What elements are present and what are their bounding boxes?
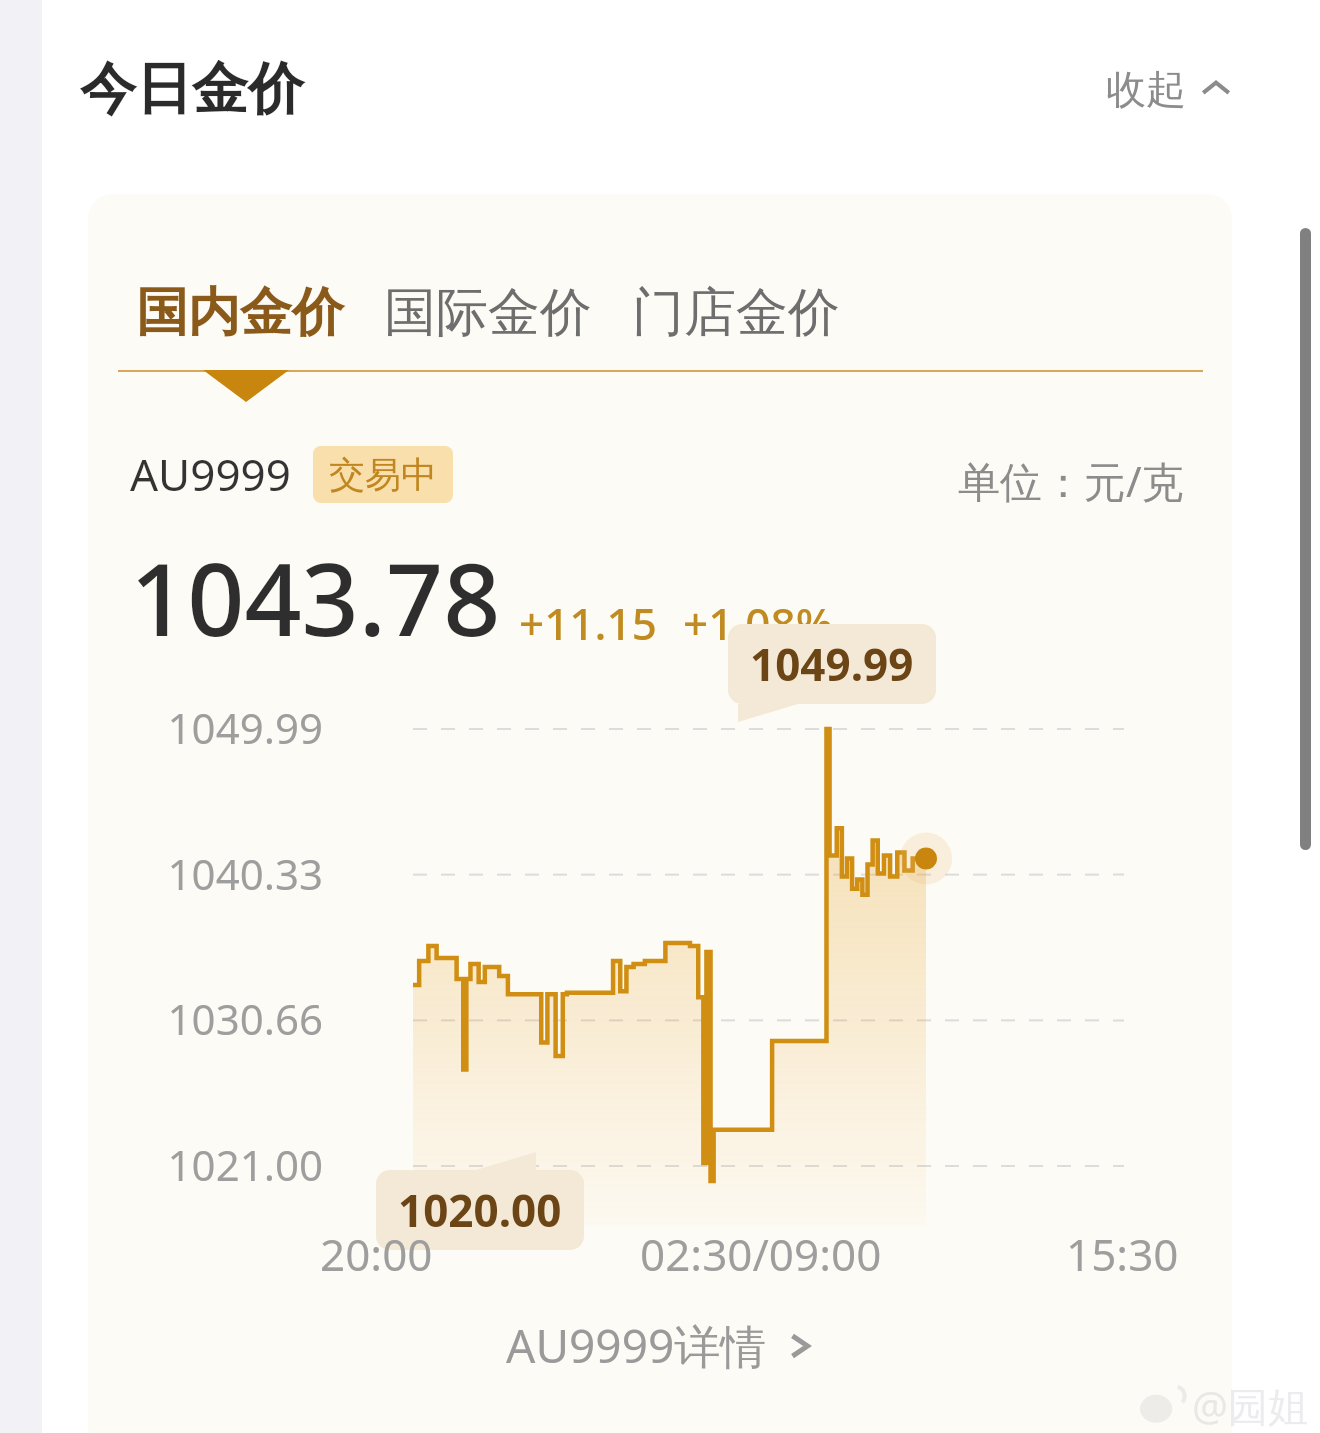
button[interactable]: 收起 — [1098, 58, 1240, 120]
staticText: 1049.99 — [750, 634, 914, 694]
staticText: 1043.78 — [130, 529, 501, 665]
button[interactable]: 门店金价 — [626, 274, 846, 352]
staticText: 1030.66 — [167, 990, 323, 1047]
staticText: 1049.99 — [167, 699, 323, 756]
staticText: 收起 — [1106, 64, 1186, 114]
button[interactable]: 交易中 — [313, 446, 453, 503]
staticText: 国内金价 — [136, 280, 344, 346]
staticText: 15:30 — [1066, 1224, 1179, 1284]
staticText: 国际金价 — [384, 280, 592, 346]
staticText: 今日金价 — [80, 54, 304, 125]
button[interactable]: 国内金价 — [130, 274, 350, 352]
button[interactable]: AU9999详情 — [88, 1314, 1232, 1377]
staticText: 20:00 — [320, 1224, 433, 1284]
staticText: 1040.33 — [167, 845, 323, 902]
other: Weibo watermark — [1140, 1378, 1308, 1433]
staticText: +1.08% — [683, 593, 834, 653]
button[interactable]: 国际金价 — [378, 274, 598, 352]
staticText: 02:30/09:00 — [640, 1224, 882, 1284]
staticText: 1021.00 — [167, 1136, 323, 1193]
staticText: 1020.00 — [398, 1180, 562, 1240]
staticText: 单位：元/克 — [958, 452, 1184, 509]
staticText: 门店金价 — [632, 280, 840, 346]
staticText: 交易中 — [329, 452, 437, 497]
staticText: @园姐 — [1192, 1378, 1308, 1433]
staticText: AU9999详情 — [506, 1314, 767, 1377]
staticText: +11.15 — [519, 593, 657, 653]
staticText: AU9999 — [130, 444, 291, 504]
